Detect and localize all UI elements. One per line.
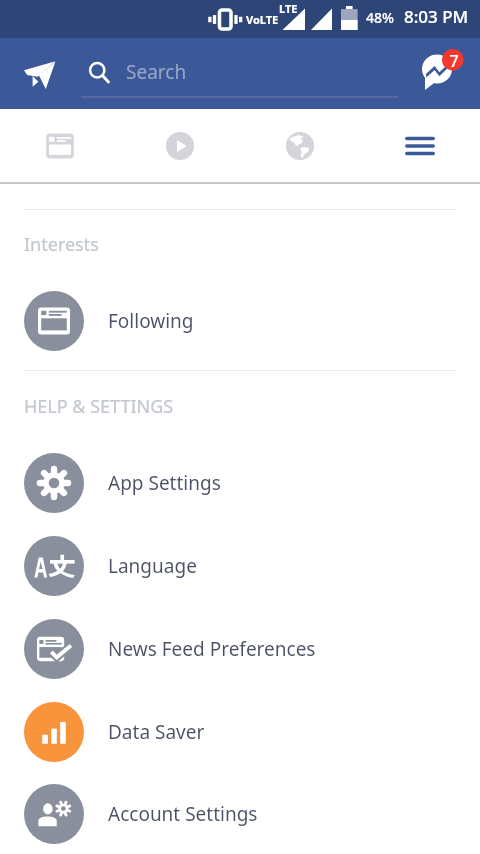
button[interactable]: App Settings [0, 441, 480, 524]
button[interactable]: Account Settings [0, 773, 480, 854]
staticText: News Feed Preferences [108, 636, 316, 662]
staticText: Search [126, 59, 187, 85]
staticText: 7 [449, 50, 459, 72]
staticText: Language [108, 553, 197, 579]
staticText: 48% [366, 8, 394, 27]
staticText: Data Saver [108, 719, 205, 745]
staticText: VoLTE [246, 12, 279, 27]
button[interactable]: Data Saver [0, 690, 480, 773]
button[interactable]: News Feed [0, 109, 120, 182]
button[interactable]: Language [0, 524, 480, 607]
button[interactable]: Messenger [416, 49, 466, 99]
staticText: Following [108, 308, 194, 334]
button[interactable]: Globe [240, 109, 360, 182]
button[interactable]: Search [81, 50, 398, 98]
staticText: LTE [279, 1, 298, 16]
button[interactable]: Following [0, 279, 480, 362]
button[interactable]: Send [14, 48, 66, 100]
staticText: App Settings [108, 470, 221, 496]
staticText: Interests [24, 232, 99, 257]
staticText: 8:03 PM [404, 5, 469, 28]
button[interactable]: Videos [120, 109, 240, 182]
button[interactable]: News Feed Preferences [0, 607, 480, 690]
button[interactable]: Menu [360, 109, 480, 182]
staticText: Account Settings [108, 801, 258, 827]
staticText: HELP & SETTINGS [24, 394, 174, 419]
